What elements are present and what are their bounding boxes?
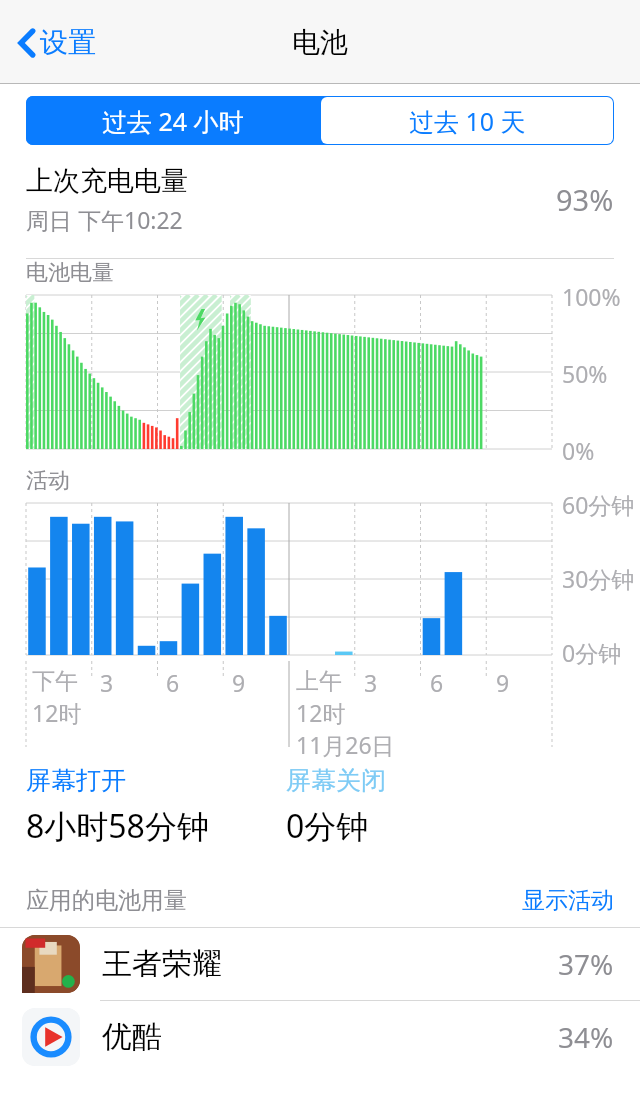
staticText: 37% <box>558 945 614 983</box>
button[interactable]: 设置 <box>14 19 100 66</box>
staticText: 上午 12时 11月26日 <box>296 667 395 760</box>
staticText: 下午 12时 <box>32 667 82 728</box>
staticText: 显示活动 <box>522 886 614 915</box>
staticText: 活动 <box>26 467 70 495</box>
staticText: 50% <box>562 358 608 389</box>
staticText: 34% <box>558 1018 614 1056</box>
button[interactable]: 过去 24 小时 <box>26 96 320 145</box>
staticText: 优酷 <box>102 1018 558 1056</box>
staticText: 0% <box>562 435 595 466</box>
staticText: 周日 下午10:22 <box>26 204 183 235</box>
staticText: 应用的电池用量 <box>26 886 522 915</box>
staticText: 0分钟 <box>286 804 369 848</box>
staticText: 6 <box>430 667 444 698</box>
staticText: 3 <box>100 667 114 698</box>
staticText: 60分钟 <box>562 489 635 520</box>
staticText: 0分钟 <box>562 637 622 668</box>
staticText: 电池电量 <box>26 259 114 287</box>
staticText: 8小时58分钟 <box>26 804 209 848</box>
staticText: 3 <box>364 667 378 698</box>
staticText: 过去 10 天 <box>409 104 526 138</box>
staticText: 上次充电电量 <box>26 164 188 198</box>
staticText: 电池 <box>292 25 348 60</box>
staticText: 9 <box>496 667 510 698</box>
staticText: 屏幕关闭 <box>286 765 386 796</box>
staticText: 设置 <box>40 25 96 60</box>
staticText: 9 <box>232 667 246 698</box>
staticText: 过去 24 小时 <box>102 104 244 138</box>
staticText: 屏幕打开 <box>26 765 126 796</box>
button[interactable]: 过去 10 天 <box>321 97 613 144</box>
staticText: 6 <box>166 667 180 698</box>
staticText: 100% <box>562 281 621 312</box>
staticText: 93% <box>556 180 614 219</box>
button[interactable]: 显示活动 <box>522 886 614 915</box>
staticText: 王者荣耀 <box>102 945 558 983</box>
button[interactable]: 王者荣耀 <box>0 928 640 1000</box>
button[interactable]: 优酷 <box>0 1001 640 1073</box>
staticText: 30分钟 <box>562 563 635 594</box>
